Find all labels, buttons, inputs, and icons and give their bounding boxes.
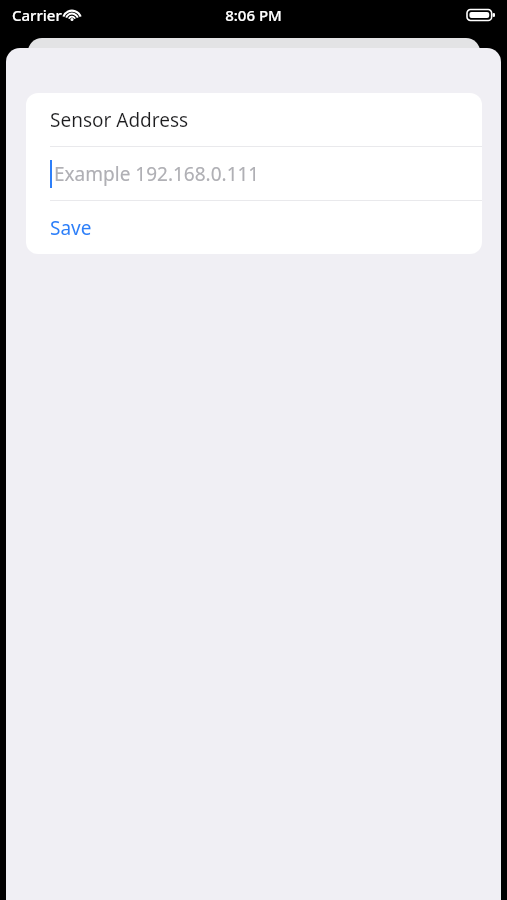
button[interactable]: Save (26, 201, 482, 254)
button[interactable]: Sensor Address (26, 93, 482, 146)
staticText: Carrier (12, 5, 62, 25)
staticText: Sensor Address (50, 107, 189, 133)
other: Battery full (467, 8, 495, 22)
staticText: Example 192.168.0.111 (54, 161, 260, 187)
button[interactable]: Example 192.168.0.111 (26, 147, 482, 200)
other: Wi-Fi (62, 7, 82, 23)
staticText: 8:06 PM (225, 5, 282, 25)
staticText: Save (50, 215, 92, 241)
